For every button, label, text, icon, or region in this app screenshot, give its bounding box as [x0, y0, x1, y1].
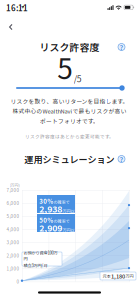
- staticText: 30%: [39, 197, 53, 205]
- staticText: の確率で: [53, 218, 69, 224]
- staticText: 万円以上: [63, 227, 79, 233]
- staticText: (万円): [9, 182, 19, 188]
- staticText: リスク許容度: [39, 40, 99, 54]
- staticText: 2,000: [6, 252, 19, 259]
- button[interactable]: Help: [115, 41, 127, 53]
- staticText: リスク許容度はあとから変更可能です。: [25, 133, 114, 140]
- staticText: 2,938: [39, 202, 62, 215]
- staticText: 1,000: [6, 265, 19, 272]
- staticText: ポートフォリオです。: [40, 117, 99, 125]
- staticText: 5,000: [6, 213, 19, 219]
- staticText: 1,180: [111, 272, 125, 280]
- button[interactable]: Back: [1, 18, 21, 36]
- staticText: 積立3万円/月: [24, 262, 48, 269]
- staticText: 2,909: [39, 221, 62, 234]
- staticText: 50%: [39, 216, 53, 224]
- staticText: 6,000: [6, 200, 19, 206]
- staticText: 万円: [126, 273, 134, 279]
- staticText: 株式中心のWealthNaviで最もリスクが高い: [12, 107, 126, 115]
- staticText: ?: [119, 42, 123, 52]
- staticText: の確率で: [53, 199, 69, 205]
- staticText: 7,000: [6, 187, 19, 193]
- staticText: 3,000: [6, 239, 19, 246]
- staticText: 4,000: [6, 226, 19, 232]
- staticText: 16:11: [6, 2, 28, 14]
- staticText: 元本: [102, 273, 110, 279]
- staticText: 0: [16, 278, 19, 285]
- staticText: /5: [74, 72, 82, 85]
- button[interactable]: Help: [115, 153, 127, 165]
- staticText: 万円以上: [63, 208, 79, 214]
- staticText: 5: [57, 47, 73, 87]
- staticText: ?: [119, 154, 123, 164]
- staticText: リスクを取り、高いリターンを目指します。: [10, 97, 128, 105]
- staticText: 運用シミュレーション: [24, 152, 114, 165]
- staticText: お預かり資産100万円: [24, 249, 58, 262]
